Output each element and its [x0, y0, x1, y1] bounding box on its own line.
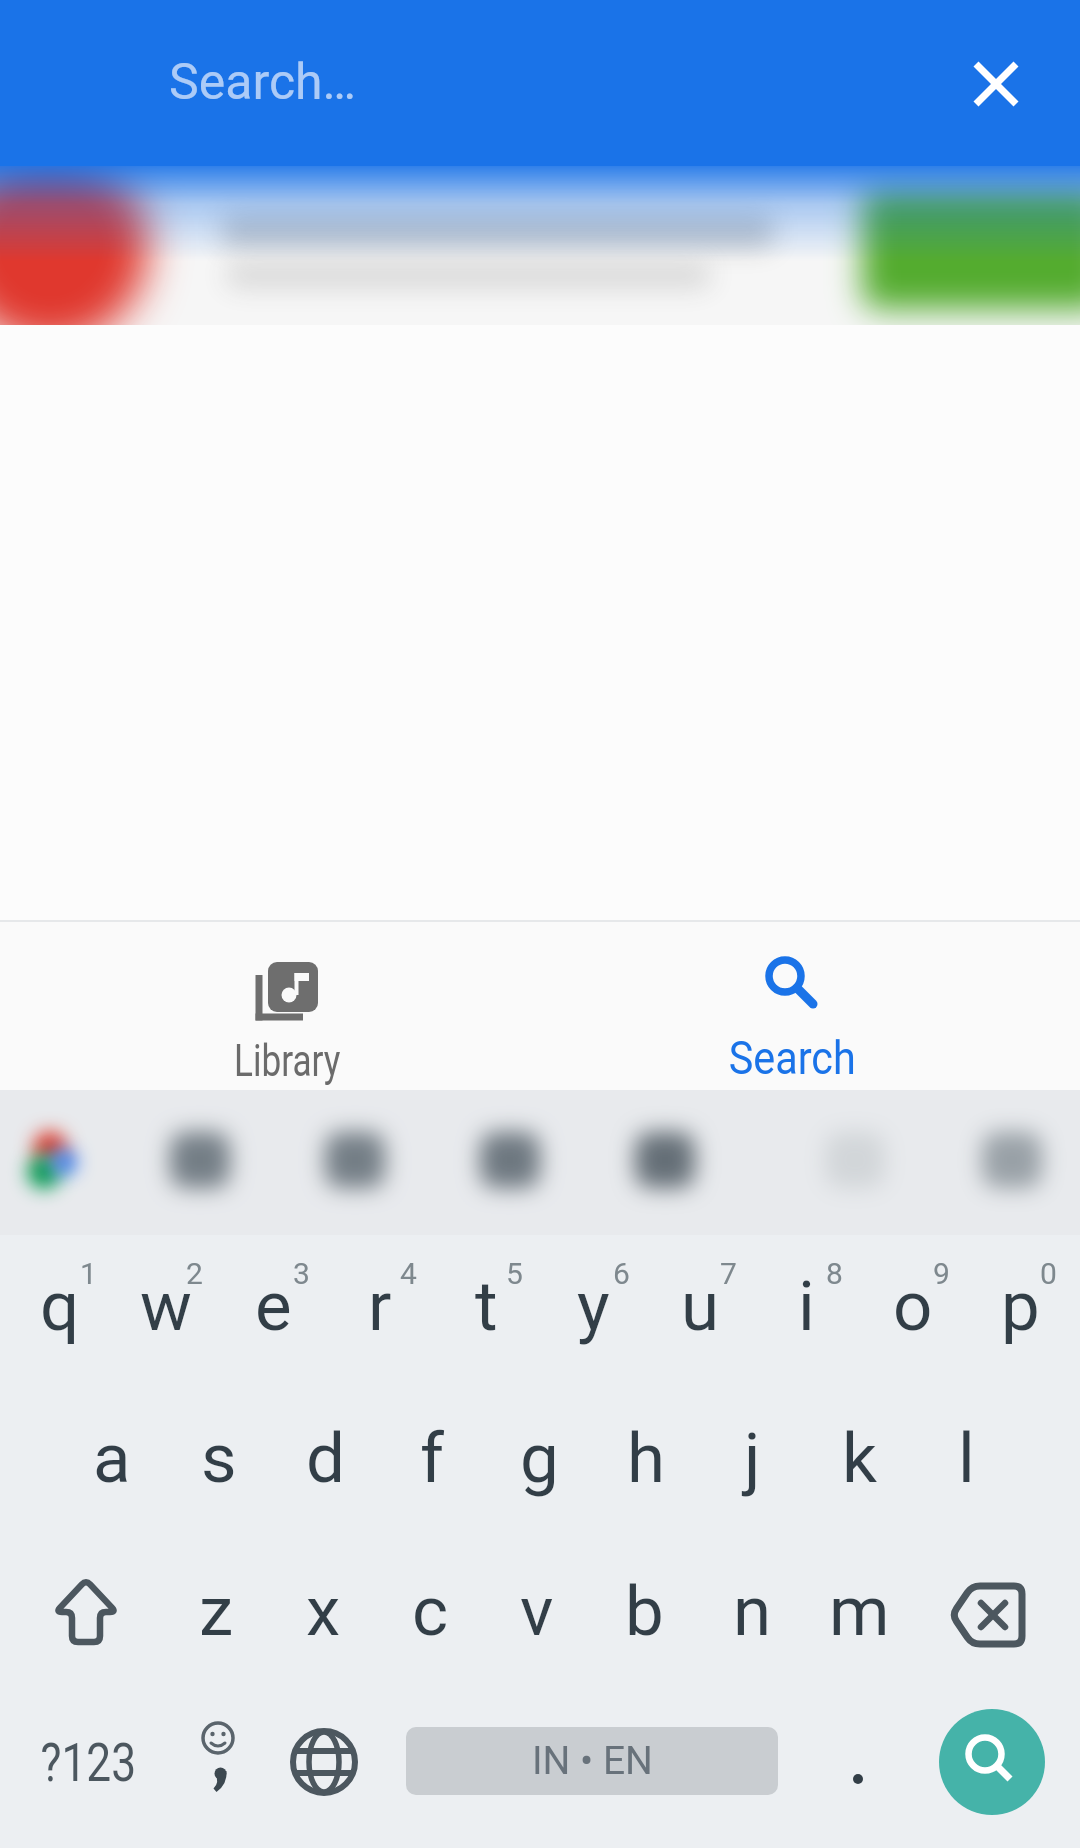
staticText: 8: [826, 1256, 843, 1291]
staticText: IN • EN: [532, 1738, 653, 1784]
staticText: g: [520, 1418, 559, 1499]
staticText: Library: [234, 1034, 341, 1087]
staticText: s: [201, 1418, 237, 1499]
staticText: 7: [720, 1256, 737, 1291]
button[interactable]: q: [8, 1236, 112, 1376]
button[interactable]: l: [914, 1388, 1018, 1528]
button[interactable]: u: [648, 1236, 752, 1376]
staticText: q: [40, 1266, 80, 1347]
staticText: j: [744, 1418, 761, 1499]
button[interactable]: y: [541, 1236, 645, 1376]
button[interactable]: ?123: [18, 1702, 158, 1822]
staticText: d: [306, 1418, 345, 1499]
staticText: c: [412, 1571, 449, 1652]
staticText: a: [93, 1418, 131, 1499]
staticText: 6: [613, 1256, 630, 1291]
button[interactable]: Search: [600, 922, 980, 1090]
button[interactable]: b: [592, 1541, 696, 1681]
staticText: 9: [933, 1256, 950, 1291]
staticText: r: [368, 1266, 392, 1347]
button[interactable]: v: [485, 1541, 589, 1681]
button[interactable]: [0, 166, 1080, 325]
button[interactable]: [163, 1702, 273, 1822]
button[interactable]: h: [594, 1388, 698, 1528]
staticText: 0: [1040, 1256, 1057, 1291]
button[interactable]: [931, 1555, 1051, 1675]
staticText: z: [199, 1571, 234, 1652]
button[interactable]: [26, 1552, 146, 1672]
button[interactable]: IN • EN: [406, 1727, 778, 1795]
staticText: n: [733, 1571, 772, 1652]
staticText: i: [798, 1266, 815, 1347]
staticText: 4: [400, 1256, 417, 1291]
staticText: p: [1001, 1266, 1040, 1347]
staticText: u: [681, 1266, 720, 1347]
button[interactable]: [939, 1709, 1045, 1815]
staticText: 1: [80, 1256, 97, 1291]
button[interactable]: [946, 34, 1046, 134]
staticText: x: [306, 1571, 341, 1652]
button[interactable]: x: [271, 1541, 375, 1681]
button[interactable]: Library: [97, 922, 477, 1090]
button[interactable]: c: [378, 1541, 482, 1681]
button[interactable]: n: [700, 1541, 804, 1681]
button[interactable]: t: [434, 1236, 538, 1376]
button[interactable]: o: [861, 1236, 965, 1376]
staticText: h: [627, 1418, 666, 1499]
button[interactable]: Search…: [150, 40, 850, 130]
button[interactable]: r: [328, 1236, 432, 1376]
button[interactable]: p: [968, 1236, 1072, 1376]
staticText: m: [829, 1571, 890, 1652]
button[interactable]: j: [700, 1388, 804, 1528]
staticText: o: [893, 1266, 933, 1347]
staticText: Search…: [169, 53, 357, 112]
button[interactable]: [813, 1702, 903, 1822]
staticText: 3: [293, 1256, 310, 1291]
staticText: ?123: [40, 1731, 136, 1794]
staticText: Search: [729, 1030, 856, 1085]
staticText: f: [420, 1418, 444, 1499]
staticText: t: [475, 1266, 498, 1347]
button[interactable]: z: [164, 1541, 268, 1681]
button[interactable]: [269, 1702, 379, 1822]
button[interactable]: w: [114, 1236, 218, 1376]
staticText: y: [577, 1266, 610, 1347]
button[interactable]: k: [807, 1388, 911, 1528]
staticText: k: [842, 1418, 877, 1499]
staticText: 5: [506, 1256, 523, 1291]
button[interactable]: s: [167, 1388, 271, 1528]
button[interactable]: e: [221, 1236, 325, 1376]
button[interactable]: i: [754, 1236, 858, 1376]
button[interactable]: g: [487, 1388, 591, 1528]
staticText: w: [140, 1266, 192, 1347]
staticText: 2: [186, 1256, 203, 1291]
button[interactable]: a: [60, 1388, 164, 1528]
button[interactable]: d: [273, 1388, 377, 1528]
staticText: v: [520, 1571, 554, 1652]
staticText: b: [625, 1571, 664, 1652]
button[interactable]: m: [807, 1541, 911, 1681]
staticText: e: [255, 1266, 292, 1347]
staticText: l: [958, 1418, 975, 1499]
button[interactable]: f: [380, 1388, 484, 1528]
